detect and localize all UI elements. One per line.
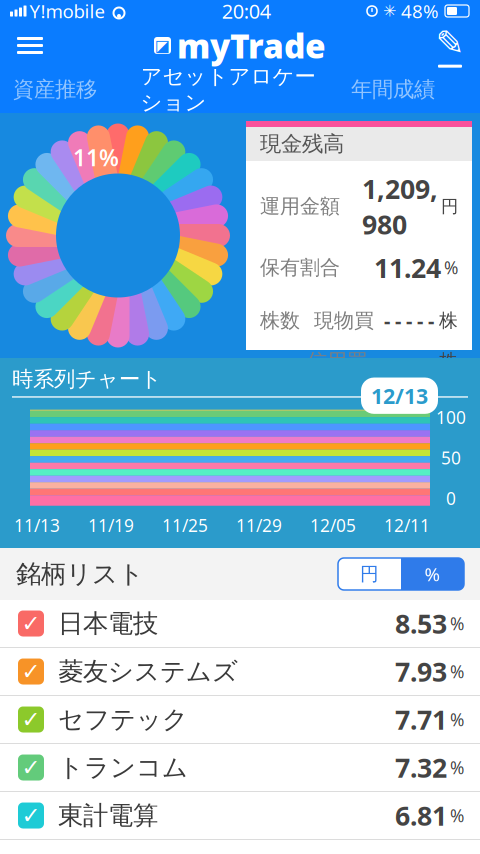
staticText: Y!mobile — [29, 0, 105, 23]
button[interactable]: ✓ — [0, 648, 480, 696]
staticText: 12/13 — [371, 381, 428, 410]
staticText: % — [424, 562, 440, 586]
staticText: 信用売 — [307, 389, 367, 414]
button[interactable]: ✓ — [0, 792, 480, 840]
staticText: ✳ — [383, 2, 396, 20]
staticText: % — [450, 660, 464, 683]
staticText: セフテック — [58, 704, 188, 735]
staticText: 株 — [439, 390, 458, 413]
staticText: 11/25 — [162, 514, 208, 537]
staticText: 現物買 — [314, 308, 374, 333]
staticText: ✓ — [21, 611, 40, 636]
button[interactable]: 年間成績 — [326, 69, 460, 113]
staticText: ✓ — [21, 707, 40, 732]
staticText: 12/11 — [384, 514, 430, 537]
staticText: 12/05 — [310, 514, 356, 537]
staticText: - - - - - — [384, 348, 434, 374]
staticText: 1,209,980 — [362, 171, 438, 242]
staticText: 7.71 — [395, 702, 447, 737]
staticText: 7.32 — [395, 750, 447, 785]
staticText: 株数 — [260, 308, 300, 333]
staticText: 7.93 — [395, 654, 447, 689]
button[interactable]: Edit — [424, 23, 476, 67]
staticText: 現金残高 — [260, 131, 344, 157]
staticText: 東計電算 — [58, 800, 158, 831]
staticText: 8.53 — [395, 606, 447, 641]
staticText: ✓ — [21, 755, 40, 780]
staticText: トランコム — [58, 752, 188, 783]
staticText: 銘柄リスト — [16, 558, 144, 589]
staticText: 20:04 — [222, 0, 271, 24]
staticText: 円 — [441, 196, 458, 217]
staticText: 日本電技 — [58, 608, 158, 639]
button[interactable]: 資産推移 — [0, 69, 130, 113]
staticText: ✓ — [21, 803, 40, 828]
staticText: % — [444, 256, 458, 279]
staticText: 11% — [73, 142, 119, 172]
staticText: 株 — [439, 309, 458, 332]
button[interactable]: 円 — [338, 558, 401, 590]
staticText: 50 — [441, 446, 461, 469]
button[interactable]: ✓ — [0, 696, 480, 744]
button[interactable]: Menu — [4, 23, 56, 67]
button[interactable]: ✓ — [0, 744, 480, 792]
staticText: 時系列チャート — [12, 366, 162, 392]
staticText: アセットアロケーション — [140, 63, 315, 116]
staticText: % — [450, 612, 464, 635]
staticText: ✎ — [435, 23, 464, 63]
button[interactable]: % — [401, 558, 464, 590]
staticText: myTrade — [177, 23, 326, 68]
staticText: 48% — [401, 0, 439, 23]
staticText: 100 — [436, 406, 466, 429]
button[interactable]: アセットアロケーション — [130, 69, 326, 113]
staticText: 資産推移 — [13, 76, 97, 103]
staticText: 運用金額 — [260, 194, 340, 219]
staticText: 11.24 — [374, 250, 441, 285]
staticText: 円 — [360, 562, 379, 585]
staticText: 11/19 — [88, 514, 134, 537]
staticText: - - - - - — [384, 388, 434, 415]
staticText: 保有割合 — [260, 255, 340, 280]
staticText: - - - - - — [384, 307, 434, 334]
button[interactable]: ✓ — [0, 600, 480, 648]
staticText: 菱友システムズ — [58, 656, 238, 687]
staticText: % — [450, 708, 464, 731]
staticText: 6.81 — [395, 798, 447, 833]
staticText: % — [450, 756, 464, 779]
staticText: ✓ — [21, 659, 40, 684]
staticText: 11/29 — [236, 514, 282, 537]
staticText: 年間成績 — [351, 76, 435, 103]
staticText: % — [450, 804, 464, 827]
staticText: 信用買 — [307, 349, 367, 373]
staticText: 11/13 — [14, 514, 60, 537]
staticText: 株 — [439, 350, 458, 372]
staticText: ◪ — [155, 36, 170, 55]
staticText: 0 — [446, 487, 456, 510]
